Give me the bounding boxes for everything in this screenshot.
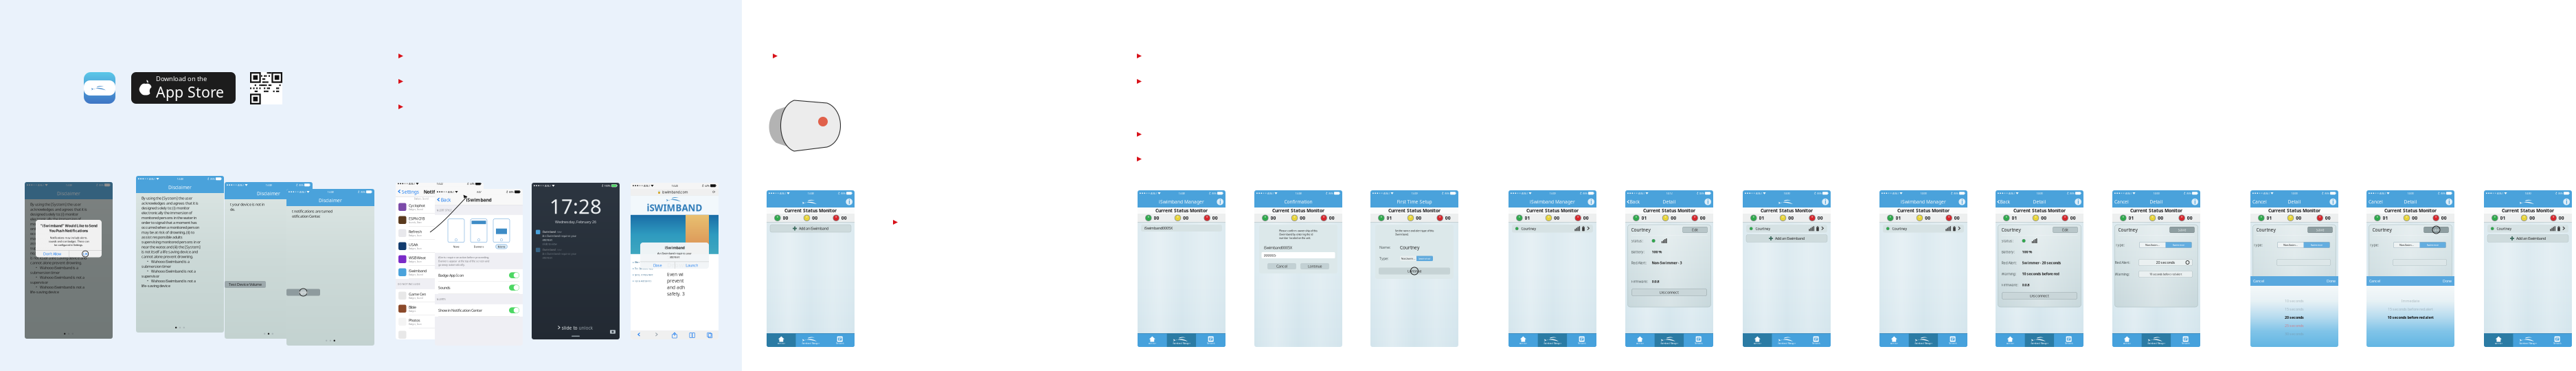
button[interactable]: Network xyxy=(1684,334,1713,347)
button[interactable]: Photos xyxy=(396,315,484,328)
button[interactable]: Info xyxy=(2075,198,2081,205)
button[interactable]: Network xyxy=(1801,334,1831,347)
button[interactable]: Tabs xyxy=(707,333,712,338)
button[interactable]: Disconnect xyxy=(1632,289,1707,296)
button[interactable]: OK xyxy=(69,250,102,257)
button[interactable]: Courtney xyxy=(1883,225,1964,233)
button[interactable]: Continue xyxy=(1300,263,1329,269)
staticText: 95% xyxy=(1582,191,1587,195)
button[interactable]: WSB Weat xyxy=(396,253,484,266)
staticText: Detail xyxy=(1663,199,1676,205)
button[interactable]: Bookmarks xyxy=(689,333,695,338)
button[interactable]: Info xyxy=(1217,198,1223,205)
staticText: 17:28 xyxy=(550,193,602,220)
button[interactable]: Info xyxy=(2330,198,2336,205)
button[interactable]: ESPN CFB xyxy=(396,214,484,227)
button[interactable]: Info xyxy=(1959,198,1965,205)
button[interactable]: Courtney xyxy=(1512,225,1593,233)
button[interactable]: Network xyxy=(2171,334,2200,347)
button[interactable]: iSwimband Manager xyxy=(2142,334,2171,347)
button[interactable]: Add an iSwimband xyxy=(2487,235,2568,242)
button[interactable]: Badge App Icon xyxy=(435,269,523,282)
button[interactable]: Bible xyxy=(396,302,484,315)
button[interactable]: Cancel xyxy=(2252,197,2267,207)
button[interactable]: Alerts xyxy=(493,219,510,249)
button[interactable]: Done xyxy=(2443,279,2452,283)
button[interactable]: Monitor xyxy=(1743,334,1772,347)
button[interactable]: Continue xyxy=(1379,268,1450,274)
button[interactable]: None xyxy=(448,219,464,249)
button[interactable]: Add an iSwimband xyxy=(770,225,851,232)
button[interactable]: Monitor xyxy=(1509,334,1538,347)
button[interactable]: USAA xyxy=(396,240,484,253)
button[interactable]: Network xyxy=(2054,334,2083,347)
button[interactable]: Sounds xyxy=(435,282,523,294)
button[interactable]: Monitor xyxy=(1996,334,2025,347)
button[interactable]: Cancel xyxy=(2369,279,2380,283)
button[interactable]: Monitor xyxy=(1879,334,1909,347)
button[interactable]: Banners xyxy=(471,219,487,249)
button[interactable]: Courtney xyxy=(2487,225,2568,233)
button[interactable]: iSwimband Manager xyxy=(2025,334,2054,347)
button[interactable]: Back xyxy=(1627,197,1640,207)
button[interactable]: Don't Allow xyxy=(36,250,69,257)
button[interactable]: Save xyxy=(2170,227,2194,233)
button[interactable]: Info xyxy=(2446,198,2452,205)
button[interactable]: Cancel xyxy=(1267,263,1296,269)
button[interactable]: Settings xyxy=(398,189,419,195)
button[interactable]: Save xyxy=(2308,227,2332,233)
button[interactable]: Monitor xyxy=(1138,334,1167,347)
button[interactable]: iSwimband xyxy=(396,266,484,279)
button[interactable]: Launch xyxy=(675,262,709,269)
button[interactable]: Disconnect xyxy=(2002,292,2077,299)
button[interactable]: Game Cen xyxy=(396,289,484,302)
button[interactable]: Cyclophot xyxy=(396,201,484,214)
button[interactable]: iSwimband Manager xyxy=(2513,334,2543,347)
button[interactable]: Info xyxy=(846,198,852,205)
button[interactable]: iSwimband Manager xyxy=(1772,334,1801,347)
button[interactable]: Add an iSwimband xyxy=(1746,235,1827,242)
button[interactable]: Network xyxy=(2543,334,2572,347)
staticText: 00 xyxy=(2296,215,2301,221)
button[interactable]: Done xyxy=(2327,279,2336,283)
button[interactable]: Monitor xyxy=(1625,334,1655,347)
button[interactable]: iSwimband0005X xyxy=(1141,225,1222,232)
button[interactable]: iSwimband Manager xyxy=(1655,334,1684,347)
button[interactable]: Save xyxy=(2424,227,2449,233)
button[interactable]: Show in Notification Center xyxy=(435,304,523,317)
button[interactable]: Back xyxy=(438,197,451,203)
button[interactable]: Network xyxy=(825,334,855,347)
button[interactable]: Forward xyxy=(656,333,658,338)
button[interactable]: Info xyxy=(2563,198,2570,205)
button[interactable]: Network xyxy=(1196,334,1225,347)
button[interactable]: Back xyxy=(1998,197,2010,207)
button[interactable]: iSwimband Manager xyxy=(796,334,825,347)
button[interactable]: iSwimband Manager xyxy=(1167,334,1196,347)
button[interactable]: Cancel xyxy=(2369,197,2383,207)
button[interactable] xyxy=(396,328,484,341)
staticText: 100 % xyxy=(2022,249,2032,254)
staticText: An iSwimband requires your xyxy=(542,234,577,238)
button[interactable]: Test Device Volume xyxy=(225,281,266,288)
button[interactable]: Monitor xyxy=(767,334,796,347)
button[interactable]: Info xyxy=(1822,198,1829,205)
button[interactable]: Cancel xyxy=(2253,279,2264,283)
button[interactable]: Monitor xyxy=(2484,334,2513,347)
button[interactable]: iSwimband Manager xyxy=(1538,334,1567,347)
button[interactable]: Monitor xyxy=(2112,334,2142,347)
button[interactable]: iSwimband Manager xyxy=(1909,334,1938,347)
button[interactable]: Edit xyxy=(2053,227,2078,233)
button[interactable]: Info xyxy=(2192,198,2198,205)
button[interactable]: Info xyxy=(1588,198,1594,205)
button[interactable]: Download on the App Store xyxy=(131,72,236,104)
button[interactable]: Close xyxy=(640,262,675,269)
button[interactable]: Network xyxy=(1938,334,1967,347)
button[interactable]: Courtney xyxy=(1746,225,1827,233)
button[interactable]: Info xyxy=(1705,198,1711,205)
button[interactable]: Network xyxy=(1567,334,1596,347)
button[interactable]: Share xyxy=(672,333,677,338)
button[interactable]: Refresh xyxy=(396,227,484,240)
button[interactable]: Back xyxy=(638,333,641,338)
button[interactable]: Edit xyxy=(1683,227,1707,233)
button[interactable]: Cancel xyxy=(2114,197,2129,207)
